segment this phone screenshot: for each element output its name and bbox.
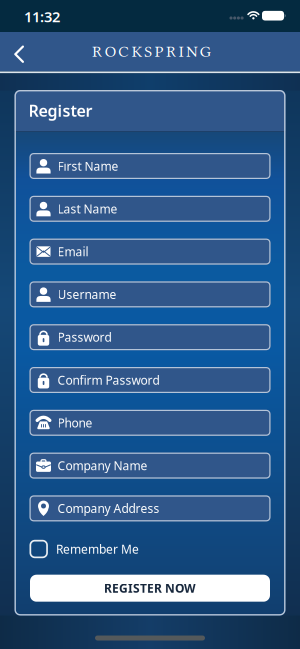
button[interactable]: Last Name <box>29 196 270 222</box>
button[interactable]: Company Name <box>29 453 270 479</box>
staticText: First Name <box>57 158 118 174</box>
button[interactable]: Password <box>29 324 270 350</box>
button[interactable]: REGISTER NOW <box>30 575 270 602</box>
staticText: Username <box>57 286 116 302</box>
staticText: Password <box>57 329 111 345</box>
staticText: I <box>179 42 184 61</box>
staticText: REGISTER NOW <box>104 580 196 596</box>
staticText: R <box>92 42 102 61</box>
staticText: K <box>132 42 142 61</box>
staticText: Company Name <box>57 458 147 473</box>
staticText: P <box>155 42 164 61</box>
staticText: R <box>166 42 176 61</box>
staticText: Remember Me <box>56 541 139 557</box>
staticText: Company Address <box>57 500 159 516</box>
staticText: Email <box>57 244 88 259</box>
staticText: Confirm Password <box>57 372 159 388</box>
staticText: Register <box>28 100 92 121</box>
staticText: 11:32 <box>24 7 60 26</box>
staticText: Phone <box>57 415 92 431</box>
staticText: G <box>200 42 211 61</box>
staticText: N <box>186 42 197 61</box>
button[interactable]: Username <box>29 281 270 307</box>
button[interactable]: Back <box>9 44 29 64</box>
button[interactable]: Phone <box>29 410 270 436</box>
button[interactable]: First Name <box>29 153 270 179</box>
button[interactable]: Confirm Password <box>29 367 270 393</box>
staticText: O <box>105 42 116 61</box>
staticText: C <box>118 42 129 61</box>
staticText: S <box>144 42 152 61</box>
button[interactable]: Remember Me <box>29 540 270 558</box>
button[interactable]: Email <box>29 239 270 265</box>
staticText: Last Name <box>57 201 117 217</box>
button[interactable]: Company Address <box>29 495 270 521</box>
